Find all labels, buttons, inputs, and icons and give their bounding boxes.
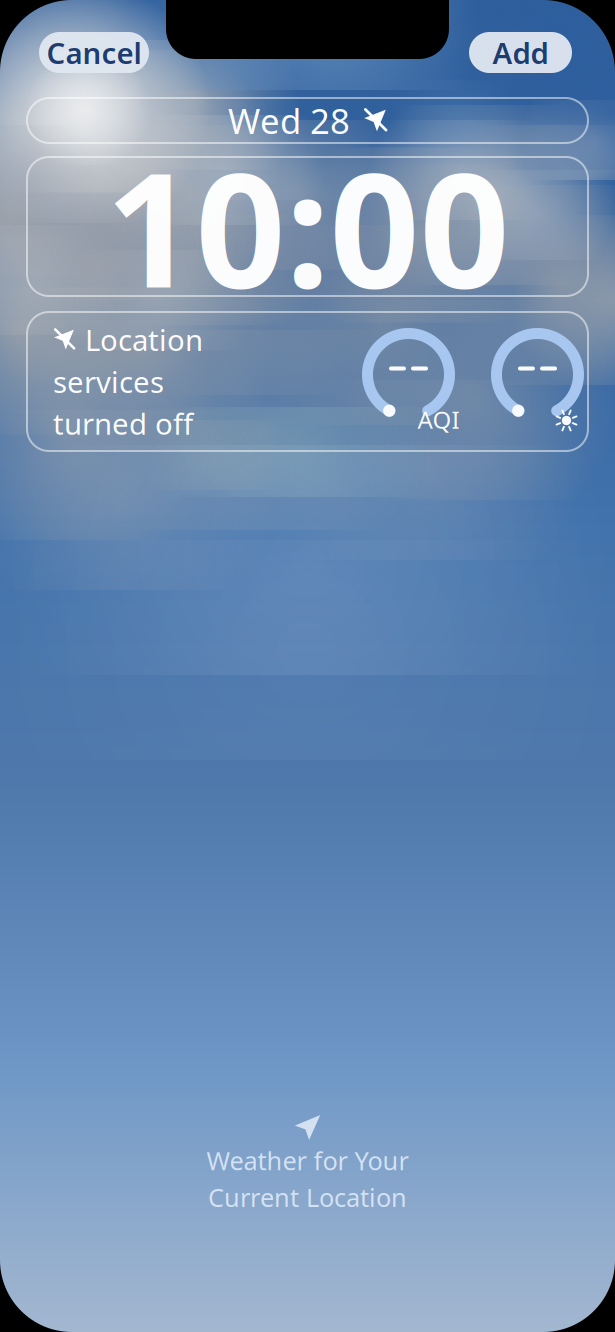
button[interactable]: Cancel <box>39 32 149 73</box>
staticText: Add <box>492 33 548 72</box>
button[interactable]: Add <box>469 32 572 73</box>
staticText: services <box>53 362 164 401</box>
staticText: Wed 28 <box>228 97 350 143</box>
staticText: Location <box>85 320 203 359</box>
staticText: 10:00 <box>105 122 509 331</box>
staticText: Weather for Your <box>206 1144 408 1177</box>
staticText: Current Location <box>208 1180 407 1214</box>
staticText: Cancel <box>46 33 141 72</box>
staticText: turned off <box>53 404 193 443</box>
staticText: AQI <box>417 404 459 435</box>
